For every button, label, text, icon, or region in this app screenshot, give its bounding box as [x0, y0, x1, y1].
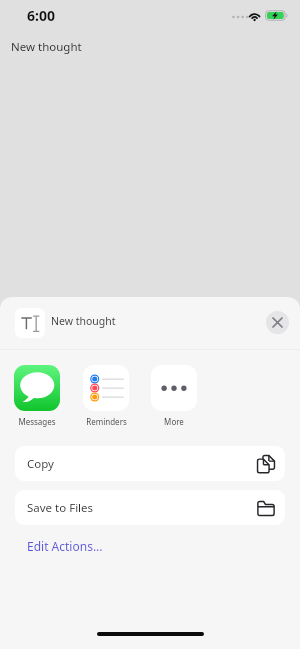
button[interactable]: Save to Files: [15, 490, 285, 525]
staticText: Save to Files: [27, 500, 94, 516]
button[interactable]: Reminders: [83, 365, 129, 427]
staticText: New thought: [11, 39, 82, 55]
button[interactable]: More: [151, 365, 197, 427]
staticText: Reminders: [86, 416, 127, 427]
button[interactable]: Edit Actions...: [27, 538, 103, 554]
staticText: 6:00: [27, 6, 55, 25]
button[interactable]: Messages: [14, 365, 60, 427]
staticText: New thought: [51, 314, 116, 328]
staticText: Messages: [18, 416, 56, 427]
button[interactable]: Close: [266, 311, 289, 334]
staticText: Copy: [27, 456, 54, 472]
button[interactable]: Copy: [15, 446, 285, 481]
staticText: More: [164, 416, 184, 427]
